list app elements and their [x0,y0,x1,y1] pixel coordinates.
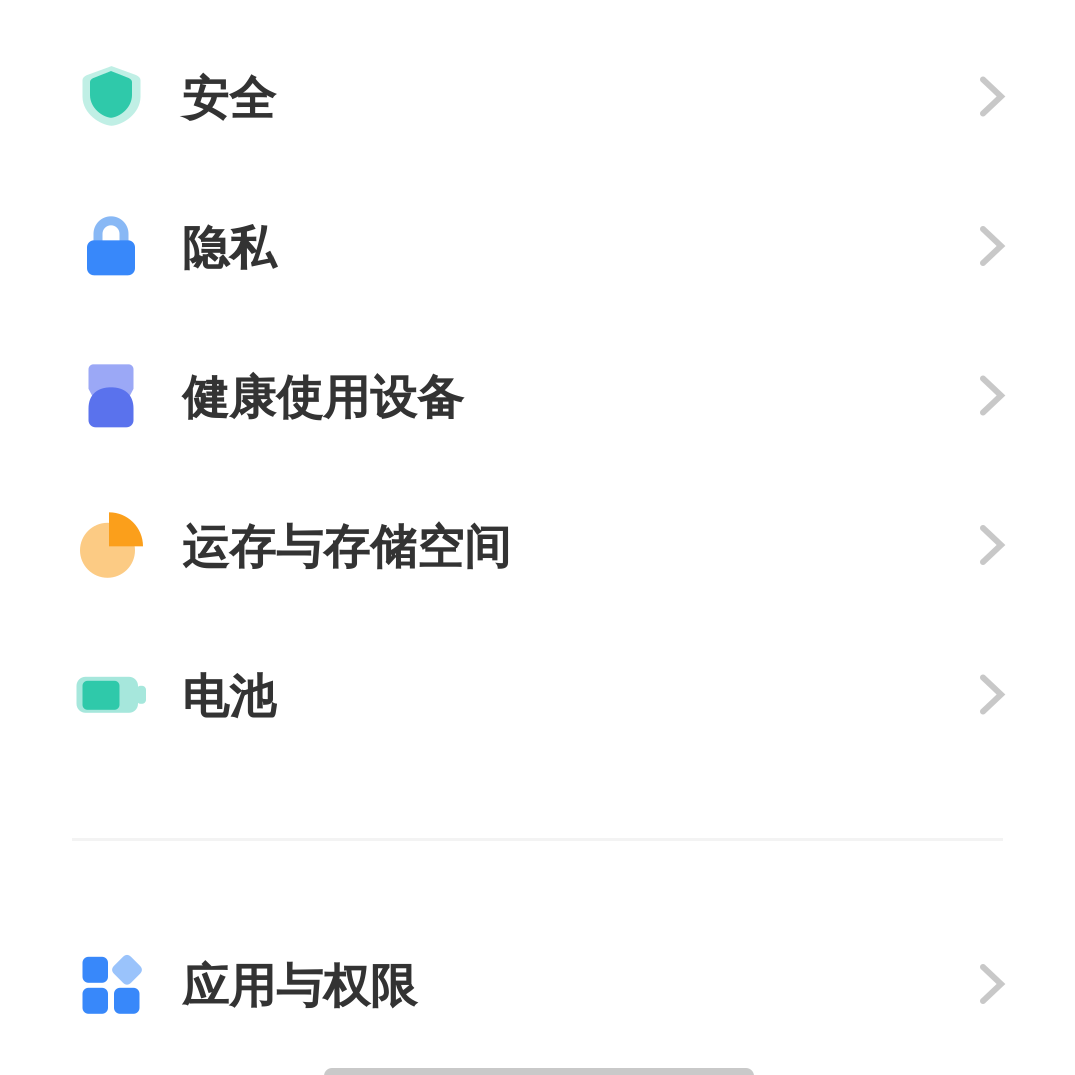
button[interactable]: 健康使用设备 [0,323,1075,473]
button[interactable]: 安全 [0,24,1075,174]
staticText: 健康使用设备 [182,369,464,427]
staticText: 运存与存储空间 [182,519,511,576]
staticText: 安全 [182,70,276,128]
staticText: 隐私 [182,220,276,277]
button[interactable]: 运存与存储空间 [0,473,1075,622]
staticText: 应用与权限 [182,958,417,1015]
button[interactable]: 应用与权限 [0,912,1075,1061]
button[interactable]: 电池 [0,622,1075,772]
button[interactable]: 隐私 [0,174,1075,323]
staticText: 电池 [182,668,276,726]
